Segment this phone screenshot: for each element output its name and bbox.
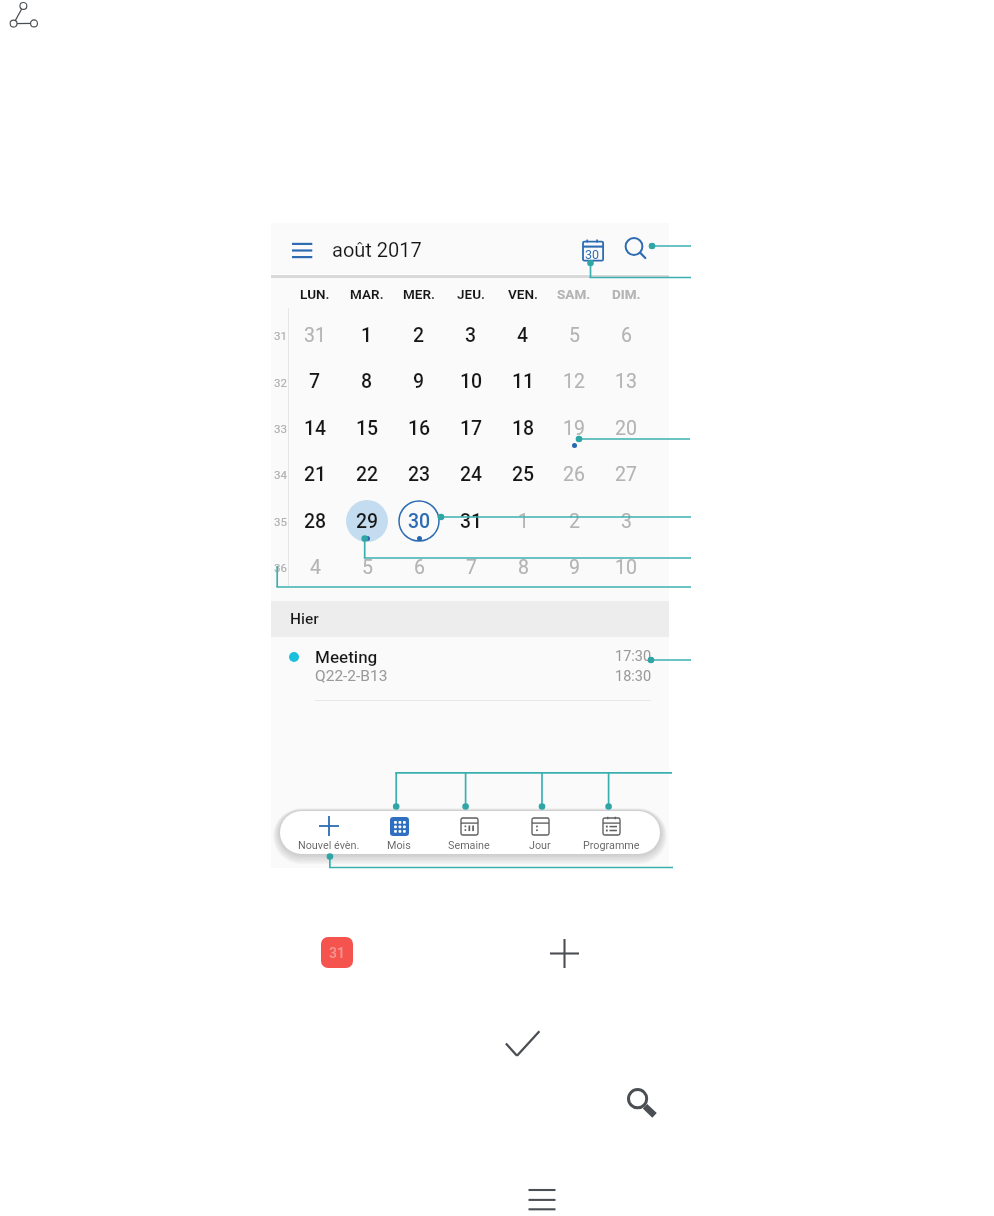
button[interactable]: 21 xyxy=(289,451,341,497)
button[interactable]: 7 xyxy=(445,544,497,590)
button[interactable]: Mois xyxy=(364,811,434,854)
button[interactable]: 2 xyxy=(548,498,600,544)
button[interactable]: 19 xyxy=(548,405,600,451)
button[interactable]: 10 xyxy=(445,358,497,404)
button[interactable]: 9 xyxy=(548,544,600,590)
staticText: Jour xyxy=(529,839,551,852)
button[interactable]: Programme xyxy=(576,811,646,854)
button[interactable]: 15 xyxy=(341,405,393,451)
button[interactable]: 1 xyxy=(497,498,549,544)
staticText: MER. xyxy=(403,286,435,302)
staticText: août 2017 xyxy=(332,238,422,261)
staticText: DIM. xyxy=(612,286,641,302)
staticText: 26 xyxy=(563,463,585,486)
button[interactable]: Meeting xyxy=(271,637,669,700)
staticText: 1 xyxy=(361,324,373,347)
staticText: 9 xyxy=(413,370,425,393)
button[interactable]: 24 xyxy=(445,451,497,497)
staticText: 23 xyxy=(408,463,431,486)
button[interactable]: 27 xyxy=(600,451,652,497)
button[interactable]: 25 xyxy=(497,451,549,497)
button[interactable]: 20 xyxy=(600,405,652,451)
button[interactable]: 22 xyxy=(341,451,393,497)
button[interactable]: 9 xyxy=(393,358,445,404)
button[interactable]: 1 xyxy=(341,312,393,358)
staticText: MAR. xyxy=(350,286,384,302)
staticText: 1 xyxy=(518,510,529,533)
staticText: Mois xyxy=(387,839,411,852)
staticText: 28 xyxy=(304,510,327,533)
staticText: 10 xyxy=(615,556,637,579)
button[interactable]: 3 xyxy=(600,498,652,544)
staticText: 18:30 xyxy=(615,668,652,685)
button[interactable]: 17 xyxy=(445,405,497,451)
button[interactable]: 31 xyxy=(289,312,341,358)
staticText: 31 xyxy=(329,945,345,961)
button[interactable]: 8 xyxy=(341,358,393,404)
button[interactable]: 18 xyxy=(497,405,549,451)
staticText: 8 xyxy=(518,556,529,579)
staticText: 35 xyxy=(274,515,287,528)
staticText: 31 xyxy=(274,329,287,342)
staticText: JEU. xyxy=(457,286,485,302)
button[interactable]: 2 xyxy=(393,312,445,358)
staticText: 18 xyxy=(512,417,535,440)
button[interactable]: 13 xyxy=(600,358,652,404)
staticText: 3 xyxy=(465,324,477,347)
button[interactable]: Nouvel évèn. xyxy=(294,811,364,854)
button[interactable]: 7 xyxy=(289,358,341,404)
button[interactable]: 11 xyxy=(497,358,549,404)
staticText: 13 xyxy=(615,370,637,393)
staticText: 32 xyxy=(274,376,287,389)
button[interactable]: 10 xyxy=(600,544,652,590)
staticText: 15 xyxy=(356,417,379,440)
staticText: 2 xyxy=(413,324,425,347)
staticText: 36 xyxy=(274,561,287,574)
button[interactable]: 16 xyxy=(393,405,445,451)
staticText: 27 xyxy=(615,463,637,486)
button[interactable]: 3 xyxy=(445,312,497,358)
staticText: 5 xyxy=(362,556,373,579)
button[interactable]: 4 xyxy=(289,544,341,590)
staticText: 21 xyxy=(304,463,327,486)
staticText: 12 xyxy=(563,370,585,393)
staticText: LUN. xyxy=(300,286,330,302)
button[interactable]: 30 xyxy=(393,498,445,544)
staticText: 4 xyxy=(310,556,321,579)
staticText: 7 xyxy=(309,370,321,393)
staticText: 25 xyxy=(512,463,535,486)
staticText: 3 xyxy=(621,510,632,533)
button[interactable]: 4 xyxy=(497,312,549,358)
button[interactable]: 12 xyxy=(548,358,600,404)
button[interactable]: Search xyxy=(620,232,652,264)
button[interactable]: Menu xyxy=(286,236,318,266)
staticText: 2 xyxy=(569,510,580,533)
button[interactable]: 8 xyxy=(497,544,549,590)
staticText: 31 xyxy=(304,324,326,347)
staticText: 33 xyxy=(274,422,287,435)
staticText: 17 xyxy=(460,417,483,440)
button[interactable]: 6 xyxy=(393,544,445,590)
staticText: Nouvel évèn. xyxy=(298,839,360,852)
staticText: 29 xyxy=(356,510,379,533)
button[interactable]: Go to date xyxy=(578,233,610,267)
staticText: 4 xyxy=(517,324,529,347)
button[interactable]: 31 xyxy=(445,498,497,544)
button[interactable]: 23 xyxy=(393,451,445,497)
button[interactable]: 5 xyxy=(341,544,393,590)
staticText: 7 xyxy=(466,556,477,579)
staticText: 34 xyxy=(274,468,287,481)
button[interactable]: Jour xyxy=(505,811,575,854)
staticText: Q22-2-B13 xyxy=(315,667,388,685)
button[interactable]: 26 xyxy=(548,451,600,497)
staticText: 31 xyxy=(460,510,483,533)
button[interactable]: 6 xyxy=(600,312,652,358)
button[interactable]: 5 xyxy=(548,312,600,358)
button[interactable]: 28 xyxy=(289,498,341,544)
staticText: 22 xyxy=(356,463,379,486)
staticText: 20 xyxy=(615,417,637,440)
staticText: 16 xyxy=(408,417,431,440)
button[interactable]: Semaine xyxy=(434,811,504,854)
button[interactable]: 14 xyxy=(289,405,341,451)
button[interactable]: 29 xyxy=(341,498,393,544)
